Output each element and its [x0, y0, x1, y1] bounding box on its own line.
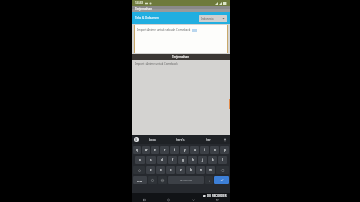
staticText: h — [192, 158, 194, 162]
button[interactable]: m — [206, 166, 215, 174]
button[interactable]: y — [180, 146, 189, 154]
staticText: i — [204, 148, 205, 152]
button[interactable]: Import Anime untuk sebuah Comeback — [134, 25, 228, 53]
staticText: Terjemahan — [135, 7, 153, 11]
button[interactable]: Home — [166, 198, 171, 202]
button[interactable]: ?123 — [133, 176, 147, 184]
staticText: g — [182, 158, 184, 162]
button[interactable]: q — [133, 146, 141, 154]
staticText: her — [206, 138, 211, 142]
button[interactable]: Period — [205, 176, 213, 184]
button[interactable]: t — [170, 146, 179, 154]
button[interactable]: Change language — [158, 176, 167, 184]
button[interactable]: Indonesia — [199, 15, 227, 22]
staticText: Import Anime untuk sebuah Comeback — [137, 28, 191, 32]
button[interactable]: Recent — [142, 198, 147, 202]
button[interactable]: Emoji — [148, 176, 157, 184]
staticText: Import : Anime untuk Comeback — [135, 62, 178, 66]
button[interactable]: s — [146, 156, 156, 164]
button[interactable]: Shift — [133, 166, 145, 174]
staticText: ID • EN • ID — [180, 179, 193, 182]
staticText: Indonesia — [201, 17, 222, 21]
staticText: DU RECORDER — [207, 194, 227, 198]
staticText: z — [150, 168, 152, 172]
staticText: k — [212, 158, 214, 162]
button[interactable]: a — [135, 156, 145, 164]
button[interactable]: Voice input — [222, 137, 227, 142]
button[interactable]: Terjemahan — [132, 54, 230, 60]
staticText: G — [135, 138, 138, 142]
button[interactable]: n — [196, 166, 205, 174]
button[interactable]: r — [160, 146, 169, 154]
button[interactable]: her — [194, 135, 222, 144]
button[interactable]: i — [200, 146, 209, 154]
button[interactable]: here's — [166, 135, 194, 144]
button[interactable]: v — [176, 166, 185, 174]
staticText: u — [194, 148, 196, 152]
staticText: m — [209, 168, 212, 172]
button[interactable]: w — [142, 146, 150, 154]
button[interactable]: j — [198, 156, 207, 164]
staticText: c — [170, 168, 172, 172]
staticText: Teks & Dokumen — [135, 16, 159, 20]
staticText: y — [184, 148, 186, 152]
staticText: Terjemahan — [172, 55, 190, 59]
button[interactable]: Google — [134, 137, 139, 142]
staticText: boca — [149, 138, 156, 142]
staticText: s — [150, 158, 152, 162]
button[interactable]: l — [218, 156, 227, 164]
button[interactable]: o — [210, 146, 219, 154]
button[interactable]: Back — [191, 198, 196, 202]
button[interactable]: d — [157, 156, 167, 164]
button[interactable]: Backspace — [216, 166, 229, 174]
staticText: l — [222, 158, 223, 162]
button[interactable]: h — [188, 156, 197, 164]
button[interactable]: g — [178, 156, 187, 164]
button[interactable]: f — [168, 156, 177, 164]
staticText: 14:33 — [135, 1, 144, 5]
staticText: j — [202, 158, 203, 162]
button[interactable]: boca — [139, 135, 166, 144]
button[interactable]: Teks & Dokumen — [135, 16, 197, 20]
button[interactable]: Space — [168, 176, 204, 184]
button[interactable]: u — [190, 146, 199, 154]
staticText: f — [172, 158, 173, 162]
button[interactable]: p — [220, 146, 229, 154]
staticText: n — [200, 168, 202, 172]
button[interactable]: b — [186, 166, 195, 174]
staticText: x — [160, 168, 162, 172]
staticText: a — [139, 158, 141, 162]
staticText: e — [154, 148, 156, 152]
staticText: q — [136, 148, 138, 152]
staticText: o — [214, 148, 216, 152]
staticText: w — [145, 148, 148, 152]
staticText: here's — [176, 138, 185, 142]
staticText: v — [180, 168, 182, 172]
staticText: b — [190, 168, 192, 172]
button[interactable]: c — [166, 166, 175, 174]
button[interactable]: e — [151, 146, 159, 154]
button[interactable]: z — [146, 166, 155, 174]
staticText: r — [164, 148, 166, 152]
button[interactable]: k — [208, 156, 217, 164]
staticText: p — [224, 148, 226, 152]
staticText: ?123 — [137, 179, 143, 182]
staticText: d — [161, 158, 163, 162]
button[interactable]: Enter — [214, 176, 229, 184]
staticText: t — [174, 148, 176, 152]
button[interactable]: Hide keyboard — [215, 198, 220, 202]
button[interactable]: x — [156, 166, 165, 174]
